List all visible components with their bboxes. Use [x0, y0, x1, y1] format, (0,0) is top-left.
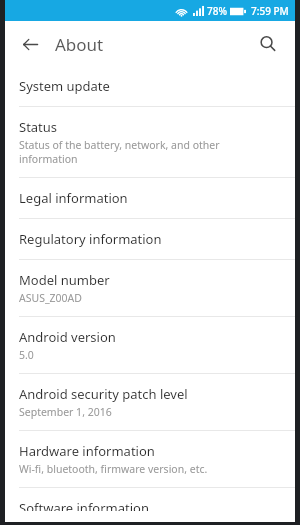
button[interactable]: Search: [253, 29, 283, 59]
button[interactable]: Android security patch level: [5, 374, 295, 431]
button[interactable]: Regulatory information: [5, 219, 295, 260]
staticText: Legal information: [19, 189, 128, 207]
button[interactable]: Software information: [5, 488, 295, 522]
staticText: 5.0: [19, 348, 34, 362]
staticText: Regulatory information: [19, 230, 162, 248]
staticText: Wi-fi, bluetooth, firmware version, etc.: [19, 462, 208, 476]
staticText: Model number: [19, 271, 110, 289]
staticText: System update: [19, 77, 110, 95]
staticText: Android version: [19, 328, 116, 346]
staticText: 78%: [207, 4, 227, 18]
button[interactable]: Legal information: [5, 178, 295, 219]
button[interactable]: Hardware information: [5, 431, 295, 488]
staticText: September 1, 2016: [19, 405, 112, 419]
staticText: Status of the battery, network, and othe…: [19, 138, 220, 152]
button[interactable]: System update: [5, 66, 295, 107]
staticText: ASUS_Z00AD: [19, 291, 82, 305]
button[interactable]: Status: [5, 107, 295, 178]
button[interactable]: Android version: [5, 317, 295, 374]
staticText: information: [19, 152, 78, 166]
staticText: Android security patch level: [19, 385, 188, 403]
staticText: Status: [19, 118, 58, 136]
staticText: Software information: [19, 499, 149, 511]
button[interactable]: Model number: [5, 260, 295, 317]
staticText: About: [55, 33, 104, 56]
staticText: 7:59 PM: [251, 4, 289, 18]
staticText: Hardware information: [19, 442, 155, 460]
button[interactable]: Back: [17, 31, 43, 57]
